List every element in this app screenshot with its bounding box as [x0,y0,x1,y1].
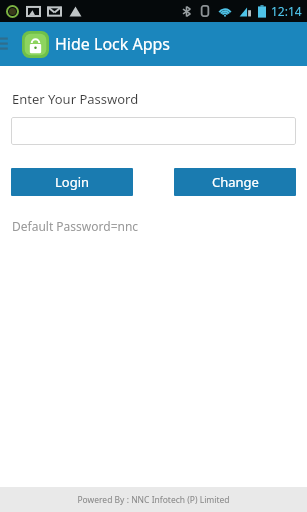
button[interactable]: Menu [0,32,14,56]
button[interactable]: Change [174,168,296,196]
staticText: Change [212,173,259,191]
staticText: Hide Lock Apps [55,33,171,55]
staticText: Powered By : NNC Infotech (P) Limited [77,494,230,506]
staticText: Login [55,173,90,191]
staticText: Default Password=nnc [12,218,139,234]
staticText: 12:14 [271,3,302,19]
button[interactable]: Login [11,168,133,196]
staticText: Enter Your Password [12,90,139,108]
button[interactable] [11,117,296,145]
